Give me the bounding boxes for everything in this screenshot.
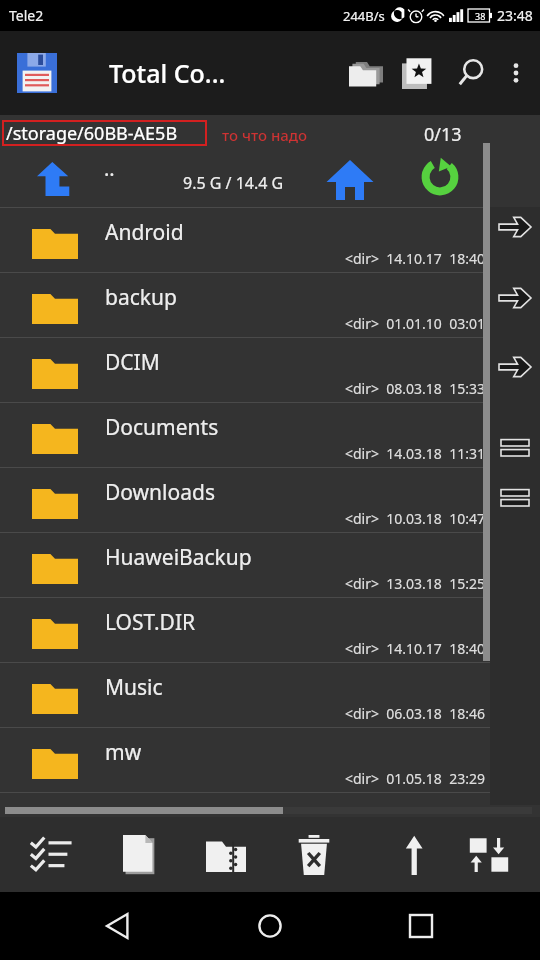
staticText: mw [105,738,142,767]
button[interactable]: More options [496,53,536,93]
staticText: Tele2 [9,6,44,25]
button[interactable]: Exchange panels [453,820,525,890]
button[interactable]: Delete [278,820,350,890]
staticText: DCIM [105,348,160,377]
button[interactable]: HuaweiBackup [0,532,490,597]
staticText: Pictures [105,803,184,815]
button[interactable]: Zip [190,820,262,890]
staticText: то что надо [222,125,308,145]
button[interactable]: LOST.DIR [0,597,490,662]
staticText: backup [105,283,177,312]
staticText: <dir> 08.03.18 15:33 [345,379,485,398]
button[interactable]: App icon [14,50,60,96]
button[interactable]: Go right [495,347,535,387]
staticText: <dir> 13.03.18 15:25 [345,574,485,593]
button[interactable]: Folders [340,47,392,99]
button[interactable]: Documents [0,402,490,467]
button[interactable]: Menu [495,478,535,518]
staticText: 38 [475,10,486,22]
staticText: .. [104,155,115,182]
button[interactable]: /storage/60BB-AE5B [2,120,207,146]
staticText: LOST.DIR [105,608,196,637]
staticText: <dir> 01.01.10 03:01 [345,314,485,333]
staticText: <dir> 14.10.17 18:40 [345,639,485,658]
button[interactable]: Go right [495,207,535,247]
button[interactable]: Home [238,894,302,958]
staticText: <dir> 06.03.18 18:46 [345,704,485,723]
button[interactable]: mw [0,727,490,792]
button[interactable]: Select files [15,820,87,890]
staticText: Downloads [105,478,215,507]
staticText: 0/13 [424,122,462,147]
button[interactable]: Search [444,47,496,99]
staticText: /storage/60BB-AE5B [6,121,178,146]
button[interactable]: backup [0,272,490,337]
button[interactable]: Home [322,151,378,207]
staticText: <dir> 14.03.18 11:31 [345,444,485,463]
button[interactable]: DCIM [0,337,490,402]
button[interactable]: Up one level [28,153,80,205]
button[interactable]: Recents [389,894,453,958]
staticText: Android [105,218,184,247]
button[interactable]: Go right [495,278,535,318]
staticText: Total Co... [109,56,226,90]
staticText: <dir> 10.03.18 10:47 [345,509,485,528]
button[interactable]: Downloads [0,467,490,532]
button[interactable]: Bookmarks [392,47,444,99]
staticText: 9.5 G / 14.4 G [183,172,284,194]
button[interactable]: New file [103,820,175,890]
button[interactable]: Android [0,207,490,272]
button[interactable]: Sort [365,820,437,890]
staticText: Documents [105,413,219,442]
staticText: Music [105,673,163,702]
staticText: 23:48 [497,6,533,25]
button[interactable]: Music [0,662,490,727]
staticText: HuaweiBackup [105,543,252,572]
button[interactable]: Back [87,894,151,958]
button[interactable]: Menu [495,428,535,468]
staticText: 244B/s [343,7,385,25]
button[interactable]: Refresh [414,151,466,203]
staticText: <dir> 01.05.18 23:29 [345,769,485,788]
staticText: <dir> 14.10.17 18:40 [345,249,485,268]
button[interactable]: Pictures [0,792,490,805]
